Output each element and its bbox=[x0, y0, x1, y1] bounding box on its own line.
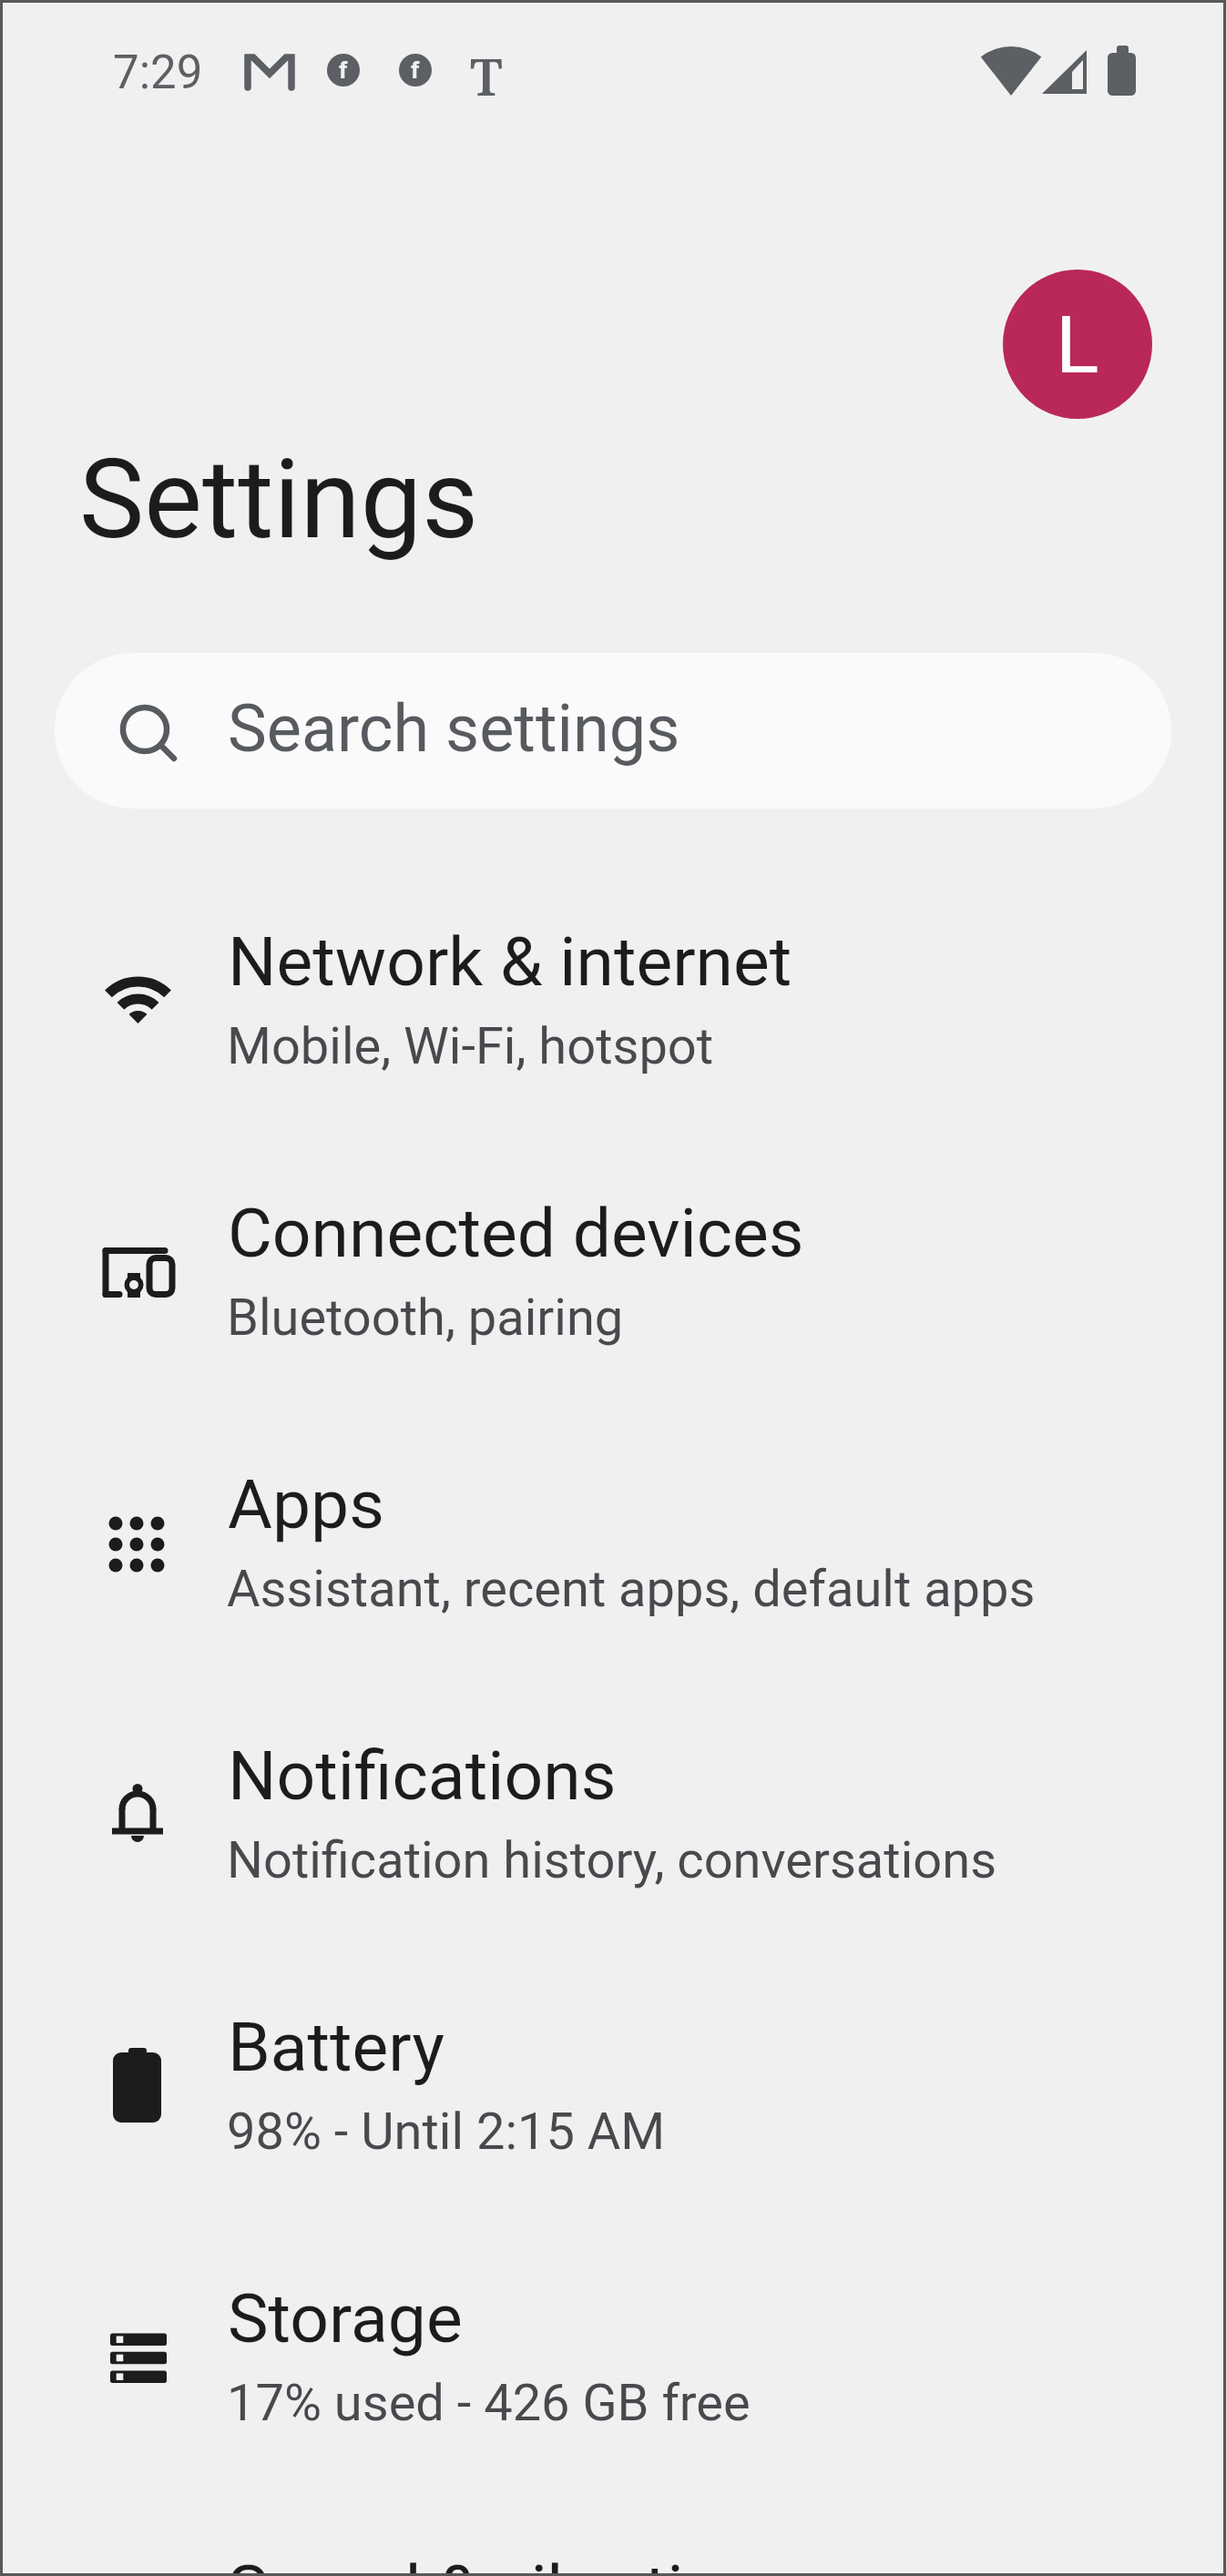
staticText: f bbox=[339, 56, 348, 84]
button[interactable]: Notifications bbox=[0, 1680, 1226, 1951]
staticText: Sound & vibration bbox=[228, 2550, 761, 2576]
staticText: Storage bbox=[228, 2278, 463, 2358]
staticText: Assistant, recent apps, default apps bbox=[227, 1559, 1036, 1619]
staticText: Bluetooth, pairing bbox=[227, 1288, 624, 1348]
staticText: f bbox=[411, 56, 420, 84]
button[interactable]: Storage bbox=[0, 2223, 1226, 2494]
button[interactable]: Sound & vibration bbox=[0, 2494, 1226, 2576]
staticText: L bbox=[1056, 298, 1099, 392]
staticText: Battery bbox=[228, 2007, 444, 2087]
staticText: 98% - Until 2:15 AM bbox=[227, 2102, 666, 2162]
staticText: T bbox=[470, 41, 503, 110]
button[interactable]: Network & internet bbox=[0, 866, 1226, 1137]
button[interactable]: L bbox=[1003, 270, 1152, 419]
staticText: 17% used - 426 GB free bbox=[227, 2373, 751, 2433]
staticText: Network & internet bbox=[228, 921, 792, 1002]
staticText: Settings bbox=[79, 436, 479, 565]
staticText: Apps bbox=[228, 1464, 384, 1544]
staticText: Search settings bbox=[228, 690, 680, 767]
button[interactable]: Connected devices bbox=[0, 1137, 1226, 1409]
button[interactable]: Battery bbox=[0, 1951, 1226, 2223]
button[interactable]: Apps bbox=[0, 1409, 1226, 1680]
button[interactable]: Search settings bbox=[55, 653, 1171, 809]
staticText: Notification history, conversations bbox=[227, 1830, 997, 1890]
staticText: Mobile, Wi-Fi, hotspot bbox=[227, 1016, 714, 1076]
staticText: Notifications bbox=[228, 1736, 617, 1816]
staticText: 7:29 bbox=[113, 46, 203, 100]
staticText: Connected devices bbox=[228, 1193, 804, 1273]
